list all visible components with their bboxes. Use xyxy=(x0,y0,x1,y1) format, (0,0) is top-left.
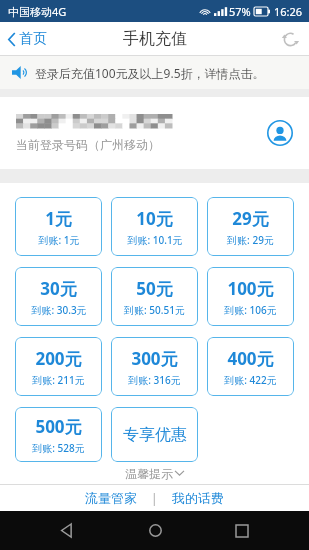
button[interactable]: 500元 xyxy=(15,407,102,462)
staticText: 到账: 29元 xyxy=(227,233,274,247)
staticText: 10元 xyxy=(136,207,173,230)
staticText: | xyxy=(151,490,158,506)
staticText: 500元 xyxy=(35,415,82,438)
button[interactable]: Recents xyxy=(222,511,262,550)
button[interactable]: 100元 xyxy=(207,267,294,326)
button[interactable]: 300元 xyxy=(111,337,198,396)
staticText: 到账: 30.3元 xyxy=(31,303,87,317)
staticText: 温馨提示 xyxy=(125,466,173,481)
staticText: 手机充值 xyxy=(123,29,187,49)
button[interactable]: 我的话费 xyxy=(158,486,238,510)
staticText: 首页 xyxy=(19,30,47,48)
button[interactable]: Back xyxy=(47,511,87,550)
staticText: 50元 xyxy=(136,277,173,300)
staticText: 到账: 211元 xyxy=(32,373,85,387)
staticText: 专享优惠 xyxy=(123,425,187,445)
button[interactable]: 400元 xyxy=(207,337,294,396)
button[interactable]: 温馨提示 xyxy=(0,462,309,484)
button[interactable]: 1元 xyxy=(15,197,102,256)
button[interactable]: Announcement xyxy=(0,56,309,89)
other: Announcement xyxy=(12,66,27,79)
staticText: 到账: 106元 xyxy=(224,303,277,317)
staticText: 到账: 316元 xyxy=(128,373,181,387)
button[interactable]: 50元 xyxy=(111,267,198,326)
staticText: 29元 xyxy=(232,207,269,230)
button[interactable]: Account xyxy=(267,120,293,146)
button[interactable]: 10元 xyxy=(111,197,198,256)
staticText: 300元 xyxy=(131,347,178,370)
staticText: 30元 xyxy=(40,277,77,300)
staticText: 中国移动4G xyxy=(8,4,67,19)
button[interactable]: 29元 xyxy=(207,197,294,256)
button[interactable]: 200元 xyxy=(15,337,102,396)
staticText: 流量管家 xyxy=(85,490,137,506)
button[interactable]: 首页 xyxy=(0,25,55,53)
staticText: 到账: 422元 xyxy=(224,373,277,387)
staticText: 到账: 10.1元 xyxy=(127,233,183,247)
staticText: 16:26 xyxy=(274,4,303,19)
staticText: 1元 xyxy=(45,207,72,230)
staticText: 200元 xyxy=(35,347,82,370)
button[interactable]: 流量管家 xyxy=(71,486,151,510)
button[interactable]: Refresh xyxy=(272,25,309,54)
staticText: 57% xyxy=(229,4,251,19)
staticText: 登录后充值100元及以上9.5折，详情点击。 xyxy=(35,65,265,81)
staticText: 100元 xyxy=(227,277,274,300)
staticText: 到账: 50.51元 xyxy=(124,303,185,317)
button[interactable]: 专享优惠 xyxy=(111,407,198,462)
staticText: 当前登录号码（广州移动） xyxy=(16,137,160,152)
staticText: 到账: 1元 xyxy=(38,233,80,247)
button[interactable]: 30元 xyxy=(15,267,102,326)
staticText: 我的话费 xyxy=(172,490,224,506)
button[interactable]: 当前登录号码（广州移动） xyxy=(0,97,309,169)
staticText: 到账: 528元 xyxy=(32,441,85,455)
button[interactable]: Home xyxy=(135,511,175,550)
staticText: 400元 xyxy=(227,347,274,370)
